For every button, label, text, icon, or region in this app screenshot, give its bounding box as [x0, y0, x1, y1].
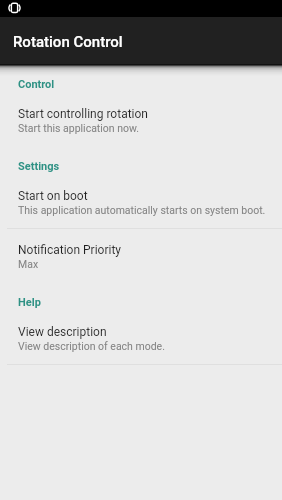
- other: Screen rotation status: [0, 0, 22, 17]
- staticText: View description: [18, 325, 107, 339]
- button[interactable]: Start on boot: [0, 175, 282, 228]
- staticText: Start this application now.: [18, 122, 140, 134]
- staticText: View description of each mode.: [18, 340, 165, 352]
- button[interactable]: Notification Priority: [0, 229, 282, 282]
- staticText: Control: [18, 78, 282, 91]
- staticText: Settings: [18, 160, 282, 173]
- staticText: This application automatically starts on…: [18, 204, 266, 216]
- staticText: Start on boot: [18, 189, 88, 203]
- staticText: Notification Priority: [18, 243, 121, 257]
- staticText: Rotation Control: [13, 33, 123, 51]
- staticText: Help: [18, 296, 282, 309]
- button[interactable]: Start controlling rotation: [0, 93, 282, 146]
- button[interactable]: View description: [0, 311, 282, 364]
- staticText: Max: [18, 258, 39, 270]
- staticText: Start controlling rotation: [18, 107, 148, 121]
